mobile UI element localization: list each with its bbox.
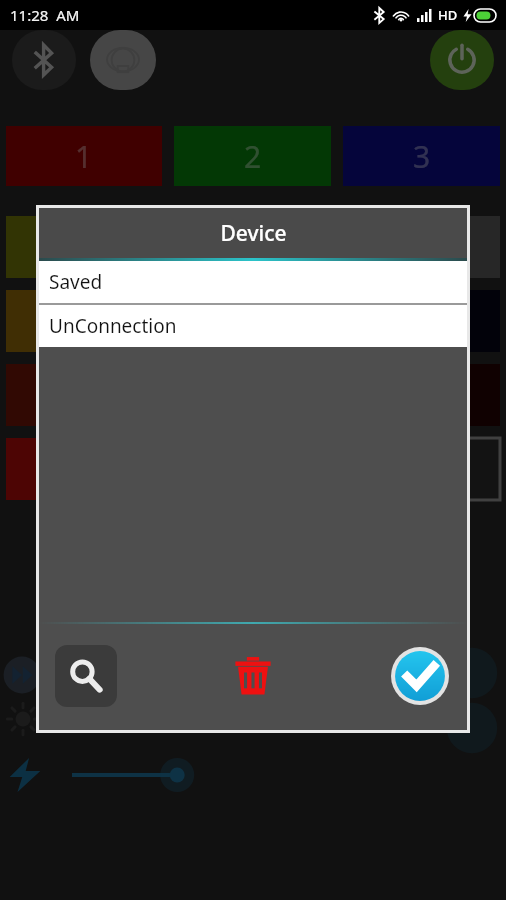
staticText: 11:28 AM — [10, 5, 80, 25]
button[interactable] — [454, 438, 500, 500]
button[interactable] — [6, 364, 52, 426]
staticText: HD — [438, 6, 458, 24]
button[interactable]: Lamp — [90, 30, 156, 90]
button[interactable]: 1 — [6, 126, 162, 186]
button[interactable] — [454, 216, 500, 278]
staticText: Saved — [49, 269, 103, 295]
button[interactable]: 3 — [343, 126, 500, 186]
staticText: Device — [220, 219, 287, 248]
button[interactable] — [454, 290, 500, 352]
staticText: 3 — [413, 136, 431, 177]
button[interactable] — [6, 438, 52, 500]
button[interactable]: UnConnection — [39, 305, 467, 347]
button[interactable]: Saved — [39, 261, 467, 303]
button[interactable]: Search — [55, 645, 117, 707]
button[interactable] — [6, 216, 52, 278]
button[interactable]: 2 — [174, 126, 331, 186]
button[interactable] — [6, 290, 52, 352]
button[interactable]: Bluetooth — [12, 30, 76, 90]
button[interactable]: Fast forward — [2, 655, 42, 695]
staticText: UnConnection — [49, 313, 177, 339]
button[interactable] — [454, 364, 500, 426]
button[interactable]: Delete — [222, 645, 284, 707]
button[interactable]: Power — [430, 30, 494, 90]
button[interactable]: OK — [389, 645, 451, 707]
button[interactable] — [68, 758, 208, 792]
staticText: 2 — [244, 136, 262, 177]
staticText: 1 — [75, 136, 93, 177]
